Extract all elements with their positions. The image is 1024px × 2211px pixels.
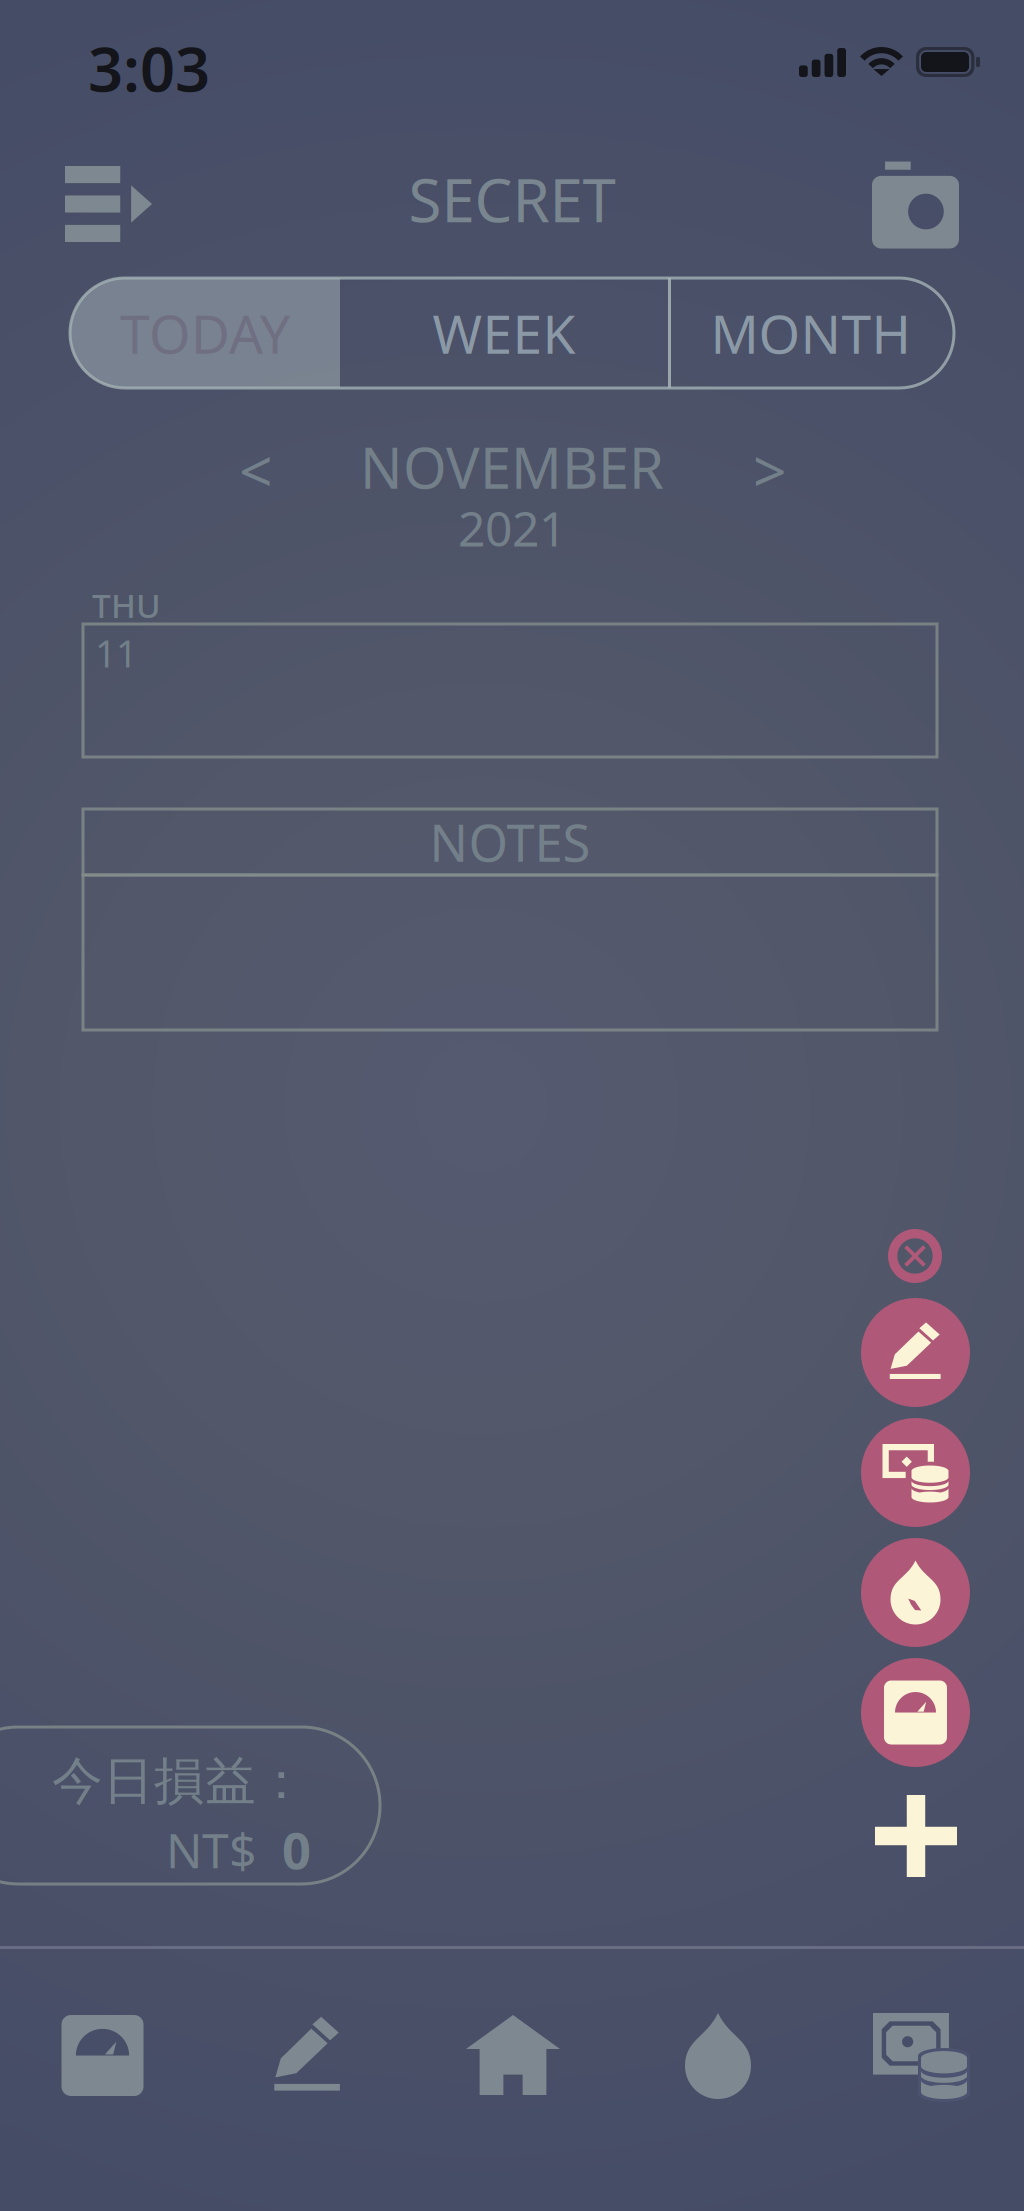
staticText: NT$: [166, 1818, 256, 1881]
staticText: TODAY: [120, 298, 290, 368]
button[interactable]: Menu: [51, 152, 166, 256]
staticText: SECRET: [408, 159, 615, 239]
button[interactable]: Add note: [861, 1298, 970, 1407]
button[interactable]: Add entry: [873, 1793, 959, 1879]
button[interactable]: Notes: [205, 1951, 410, 2211]
button[interactable]: Previous month: [216, 435, 296, 505]
button[interactable]: TODAY: [70, 278, 340, 388]
button[interactable]: Water: [616, 1951, 820, 2211]
staticText: 11: [95, 628, 137, 678]
staticText: >: [753, 431, 787, 509]
button[interactable]: Home: [410, 1949, 616, 2211]
staticText: 3:03: [88, 27, 210, 109]
staticText: <: [239, 431, 273, 509]
button[interactable]: Close menu: [888, 1229, 942, 1283]
button[interactable]: Add expense: [861, 1418, 970, 1527]
button[interactable]: Money: [820, 1951, 1024, 2211]
button[interactable]: WEEK: [340, 278, 668, 388]
staticText: THU: [92, 583, 161, 627]
button[interactable]: Add water: [861, 1538, 970, 1647]
button[interactable]: Next month: [730, 435, 810, 505]
staticText: NOTES: [429, 808, 590, 876]
staticText: WEEK: [432, 298, 575, 368]
button[interactable]: Add weight: [861, 1658, 970, 1767]
staticText: MONTH: [710, 298, 911, 368]
button[interactable]: Camera: [856, 150, 975, 260]
button[interactable]: MONTH: [668, 278, 954, 388]
staticText: 今日損益：: [52, 1750, 307, 1812]
staticText: 0: [282, 1816, 311, 1883]
button[interactable]: Weight: [0, 1949, 205, 2211]
staticText: NOVEMBER: [360, 430, 664, 504]
staticText: 2021: [458, 496, 566, 560]
